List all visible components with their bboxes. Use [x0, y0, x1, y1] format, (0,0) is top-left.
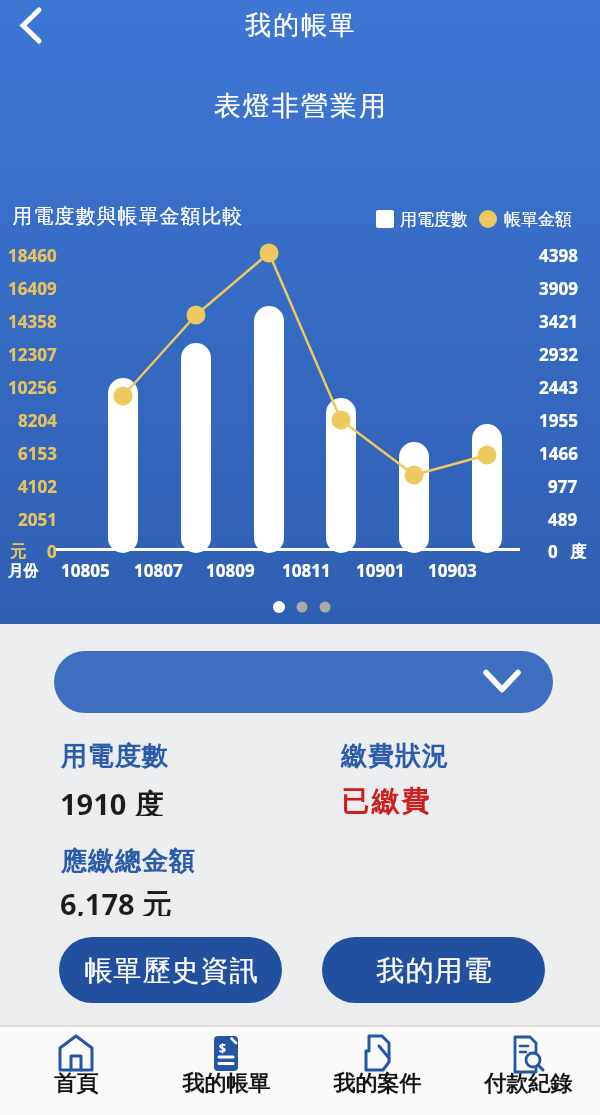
staticText: 10811 [282, 559, 331, 582]
staticText: $ [219, 1040, 226, 1055]
staticText: 4102 [18, 475, 57, 498]
staticText: 帳單歷史資訊 [84, 953, 258, 988]
staticText: 489 [548, 508, 578, 531]
staticText: 用電度數 [60, 740, 168, 770]
staticText: 8204 [18, 409, 57, 432]
staticText: 6153 [18, 442, 57, 465]
staticText: 繳費狀況 [340, 740, 448, 770]
staticText: 10256 [8, 376, 57, 399]
staticText: 10805 [61, 559, 110, 582]
staticText: 2932 [539, 343, 578, 366]
staticText: 10807 [134, 559, 183, 582]
staticText: 我的用電 [376, 953, 492, 988]
staticText: 元 [10, 542, 26, 562]
staticText: 我的帳單 [244, 9, 356, 42]
staticText: 應繳總金額 [60, 845, 195, 875]
staticText: 10809 [206, 559, 255, 582]
staticText: 977 [548, 475, 578, 498]
staticText: 已繳費 [340, 784, 430, 816]
staticText: 2443 [539, 376, 578, 399]
staticText: 2051 [18, 508, 57, 531]
staticText: 1910 度 [60, 784, 163, 816]
staticText: 10903 [428, 559, 477, 582]
staticText: 用電度數 [400, 209, 468, 230]
staticText: 首頁 [54, 1070, 98, 1098]
staticText: 我的案件 [333, 1070, 421, 1098]
staticText: 1955 [539, 409, 578, 432]
staticText: 帳單金額 [504, 209, 572, 230]
staticText: 月份 [8, 562, 38, 581]
staticText: 度 [570, 542, 586, 562]
staticText: 表燈非營業用 [213, 89, 387, 123]
staticText: 3421 [539, 310, 578, 333]
staticText: 用電度數與帳單金額比較 [12, 204, 243, 229]
staticText: 付款紀錄 [484, 1070, 572, 1098]
staticText: 我的帳單 [182, 1070, 270, 1098]
staticText: 16409 [8, 277, 57, 300]
staticText: 12307 [8, 343, 57, 366]
staticText: 0 [548, 540, 558, 563]
staticText: 4398 [539, 244, 578, 267]
staticText: 0 [47, 540, 57, 563]
staticText: 1466 [539, 442, 578, 465]
staticText: 6,178 元 [60, 884, 172, 916]
staticText: 18460 [8, 244, 57, 267]
staticText: 14358 [8, 310, 57, 333]
staticText: 3909 [539, 277, 578, 300]
staticText: 10901 [356, 559, 405, 582]
